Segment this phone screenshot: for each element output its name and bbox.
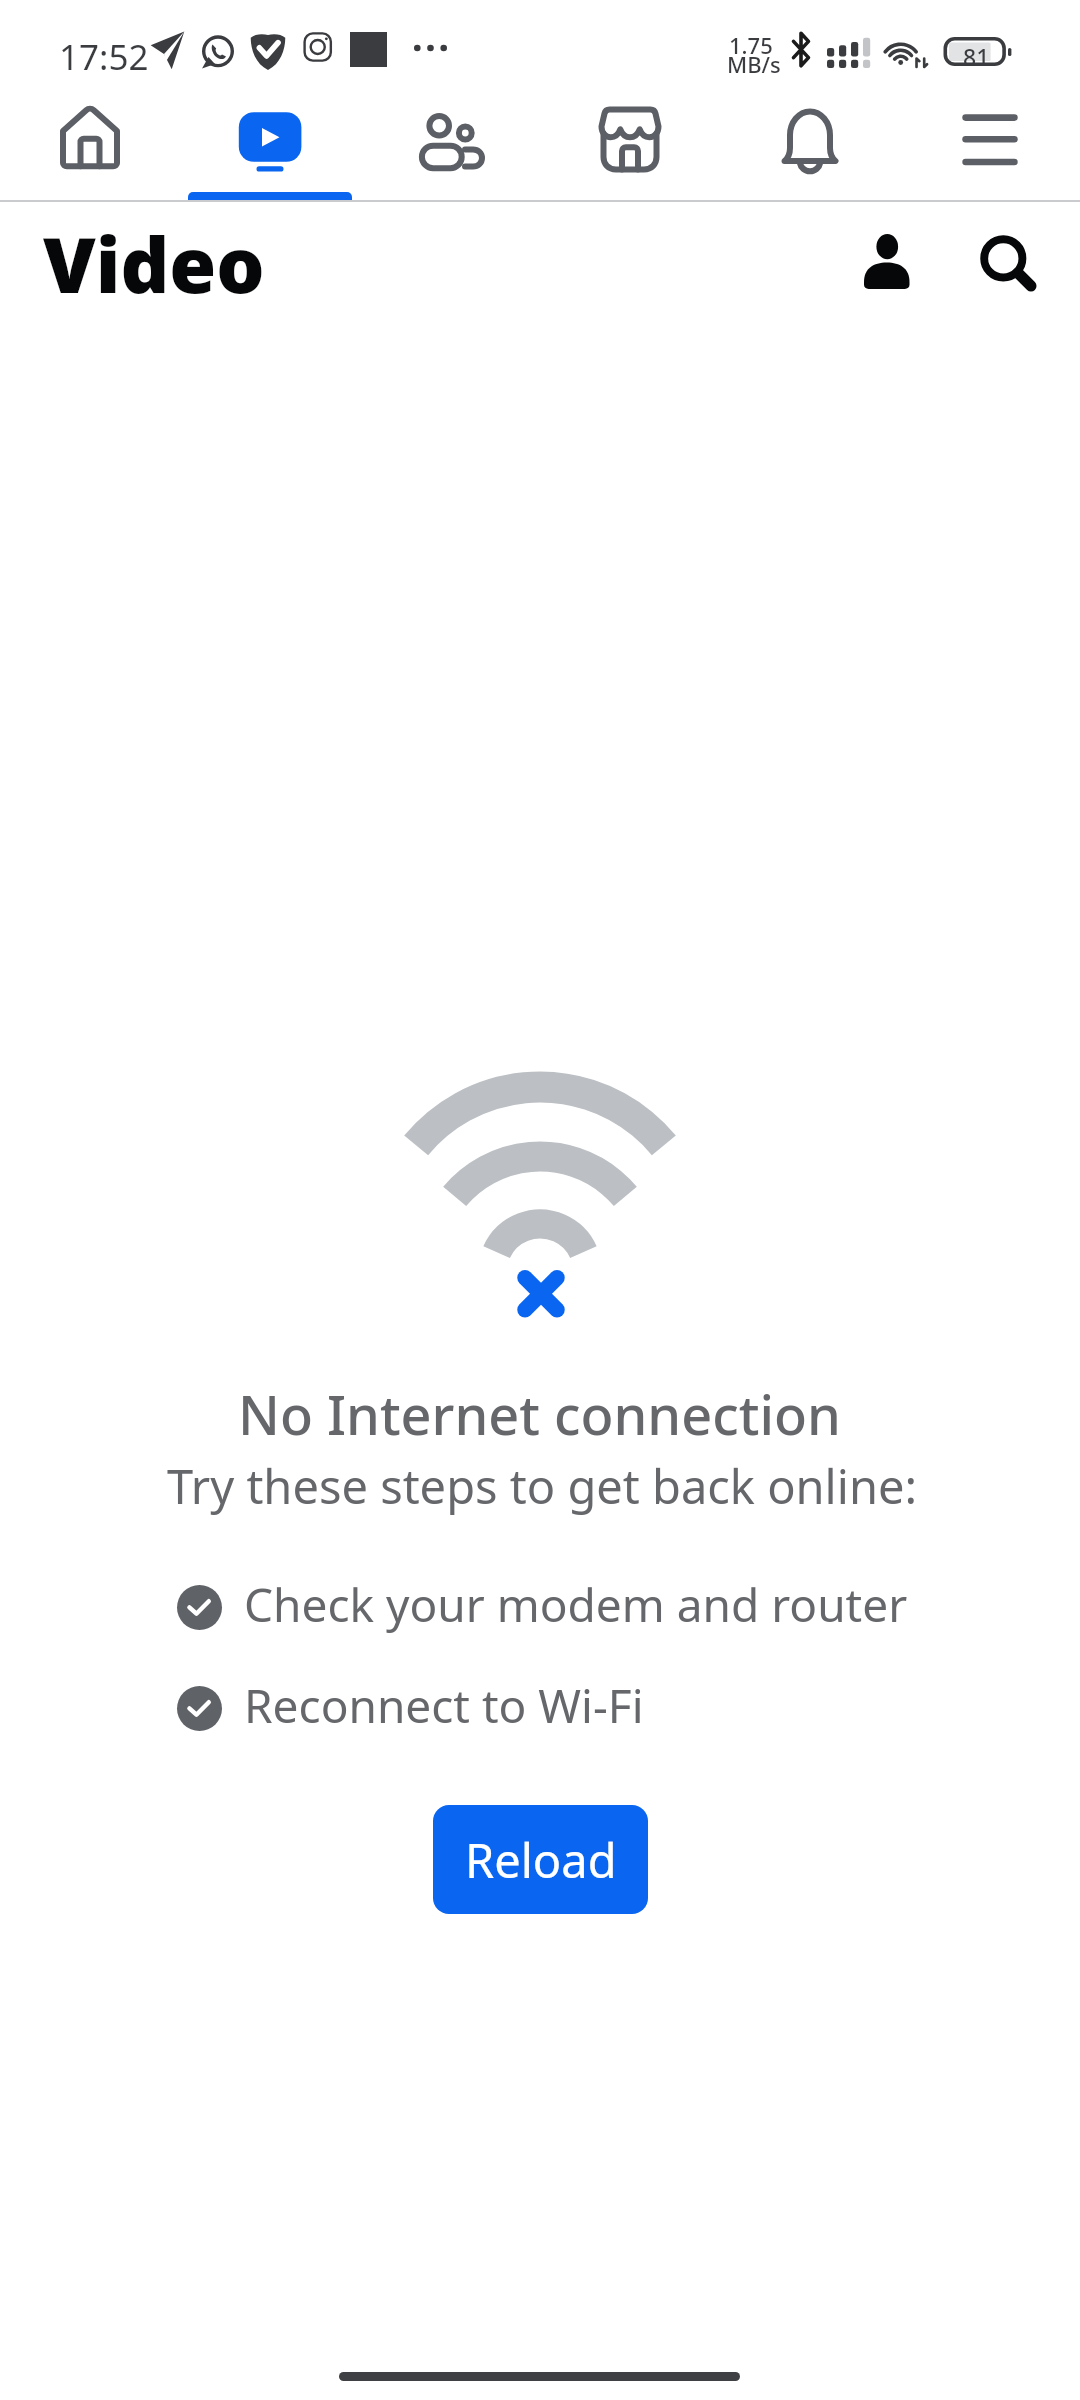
button[interactable]: Reload (433, 1805, 648, 1914)
button[interactable]: Check your modem and router (177, 1567, 917, 1648)
staticText: Try these steps to get back online: (167, 1454, 918, 1518)
staticText: Video (43, 212, 265, 316)
button[interactable]: Menu (900, 100, 1080, 203)
button[interactable]: Search (965, 222, 1049, 306)
button[interactable]: Friends (360, 100, 540, 203)
staticText: 1.75 (729, 30, 773, 60)
staticText: Reload (465, 1828, 617, 1892)
button[interactable]: Profile (845, 222, 929, 306)
staticText: Reconnect to Wi-Fi (244, 1674, 644, 1737)
staticText: 17:52 (59, 33, 149, 81)
button[interactable]: Video (180, 100, 360, 203)
button[interactable]: Notifications (720, 100, 900, 203)
button[interactable]: Home (0, 100, 180, 203)
staticText: Check your modem and router (244, 1573, 908, 1636)
button[interactable]: Reconnect to Wi-Fi (177, 1668, 917, 1749)
staticText: MB/s (727, 49, 781, 79)
staticText: No Internet connection (238, 1377, 841, 1451)
button[interactable]: Marketplace (540, 100, 720, 203)
staticText: 81 (963, 41, 990, 72)
